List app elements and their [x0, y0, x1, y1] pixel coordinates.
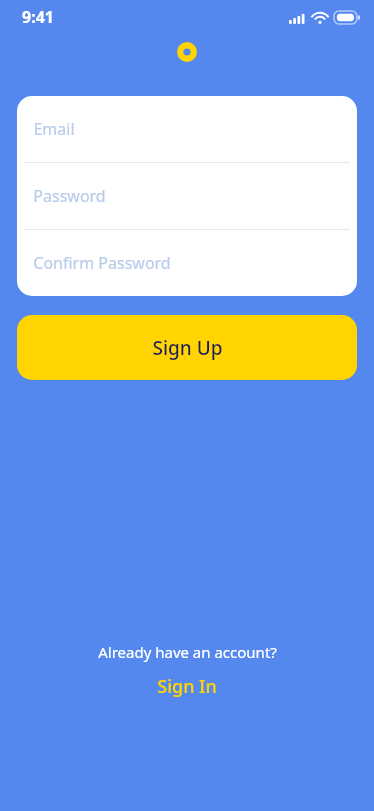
staticText: Confirm Password	[33, 252, 171, 274]
staticText: Already have an account?	[98, 642, 277, 662]
staticText: Sign Up	[152, 335, 223, 361]
staticText: 9:41	[22, 6, 54, 28]
button[interactable]: Confirm Password	[17, 230, 357, 296]
button[interactable]: Password	[17, 163, 357, 230]
staticText: Email	[33, 118, 75, 140]
button[interactable]: Email	[17, 96, 357, 163]
button[interactable]: Sign Up	[17, 315, 357, 380]
staticText: Password	[33, 185, 106, 207]
button[interactable]: Sign In	[147, 672, 227, 701]
staticText: Sign In	[157, 674, 217, 699]
